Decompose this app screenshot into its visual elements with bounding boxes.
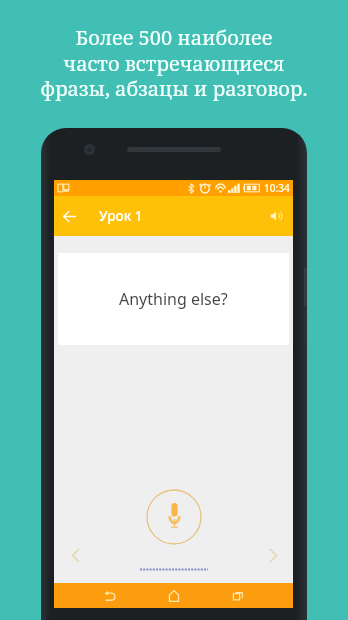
- button[interactable]: Recents: [225, 583, 251, 608]
- button[interactable]: Back: [97, 583, 123, 608]
- button[interactable]: Home: [161, 583, 187, 608]
- staticText: Урок 1: [99, 207, 143, 225]
- button[interactable]: Next: [262, 544, 284, 566]
- staticText: 10:34: [264, 181, 290, 195]
- button[interactable]: Back: [56, 203, 82, 229]
- button[interactable]: Sound: [263, 203, 289, 229]
- staticText: Anything else?: [119, 288, 228, 310]
- button[interactable]: Previous: [64, 544, 86, 566]
- button[interactable]: Record: [146, 489, 202, 545]
- staticText: Более 500 наиболее часто встречающиеся ф…: [40, 24, 308, 101]
